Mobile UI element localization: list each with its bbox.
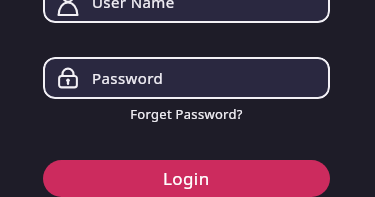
staticText: Login	[163, 167, 210, 190]
button[interactable]: Forget Password?	[43, 105, 330, 123]
button[interactable]: Login	[43, 160, 330, 197]
staticText: Forget Password?	[130, 105, 243, 123]
button[interactable]: User Name	[43, 0, 330, 23]
staticText: User Name	[92, 0, 175, 12]
staticText: Password	[92, 68, 164, 88]
button[interactable]: Password	[43, 57, 330, 99]
